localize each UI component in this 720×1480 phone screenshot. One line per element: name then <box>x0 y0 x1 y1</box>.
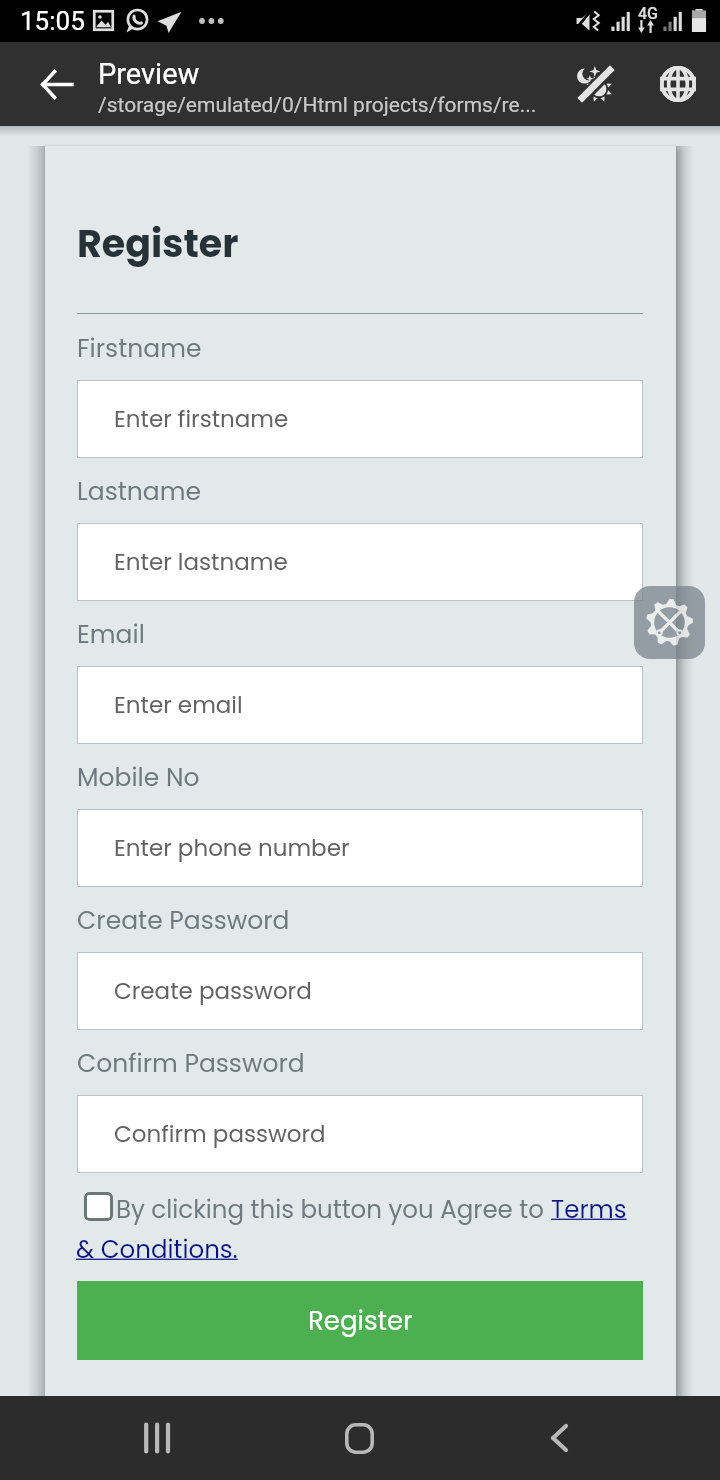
staticText: Lastname <box>77 474 202 509</box>
button[interactable]: Toggle dark mode <box>558 42 634 126</box>
staticText: Mobile No <box>77 760 200 795</box>
staticText: Confirm Password <box>77 1046 305 1081</box>
button[interactable]: Enter lastname <box>77 523 643 601</box>
button[interactable]: Register <box>77 1281 643 1360</box>
staticText: By clicking this button you Agree to <box>116 1192 551 1226</box>
staticText: 4G <box>638 4 658 23</box>
button[interactable]: Settings <box>634 586 705 659</box>
staticText: Confirm password <box>114 1118 326 1150</box>
button[interactable]: Home <box>318 1396 400 1480</box>
staticText: Enter email <box>114 689 243 721</box>
staticText: Create password <box>114 975 312 1007</box>
staticText: /storage/emulated/0/Html projects/forms/… <box>98 93 537 118</box>
button[interactable]: Open in browser <box>640 42 716 126</box>
staticText: Firstname <box>77 331 202 366</box>
staticText: Email <box>77 617 145 652</box>
button[interactable]: Create password <box>77 952 643 1030</box>
button[interactable]: & Conditions. <box>76 1232 238 1266</box>
button[interactable]: Confirm password <box>77 1095 643 1173</box>
button[interactable]: Enter email <box>77 666 643 744</box>
staticText: Create Password <box>77 903 290 938</box>
staticText: 15:05 <box>20 6 85 36</box>
button[interactable]: Terms <box>551 1192 627 1226</box>
button[interactable]: Back <box>20 42 92 126</box>
staticText: Enter phone number <box>114 832 350 864</box>
staticText: Preview <box>98 57 200 91</box>
staticText: Register <box>77 217 239 270</box>
button[interactable]: Agree to terms checkbox <box>84 1192 113 1221</box>
button[interactable]: Enter firstname <box>77 380 643 458</box>
button[interactable]: Back <box>518 1396 600 1480</box>
staticText: Enter firstname <box>114 403 289 435</box>
staticText: Register <box>308 1303 413 1339</box>
button[interactable]: Recent apps <box>116 1396 198 1480</box>
staticText: Enter lastname <box>114 546 288 578</box>
button[interactable]: Enter phone number <box>77 809 643 887</box>
